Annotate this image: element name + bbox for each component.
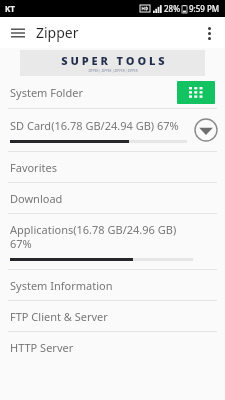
staticText: Download <box>10 191 63 206</box>
button[interactable]: Applications(16.78 GB/24.96 GB) 67% <box>0 214 225 269</box>
staticText: 28% <box>164 3 180 14</box>
staticText: System Information <box>10 278 113 293</box>
button[interactable]: Open navigation menu <box>6 21 30 45</box>
staticText: FTP Client & Server <box>10 309 108 324</box>
button[interactable]: Expand SD Card <box>193 117 219 143</box>
button[interactable]: HTTP Server <box>0 332 225 362</box>
staticText: SD Card(16.78 GB/24.94 GB) 67% <box>10 118 179 133</box>
button[interactable]: System Folder <box>0 77 225 108</box>
button[interactable]: Favorites <box>0 152 225 182</box>
staticText: System Folder <box>10 85 177 100</box>
staticText: Applications(16.78 GB/24.96 GB) 67% <box>10 222 193 251</box>
staticText: 9:59 PM <box>189 3 220 14</box>
button[interactable]: System Information <box>0 270 225 300</box>
button[interactable]: FTP Client & Server <box>0 301 225 331</box>
staticText: Zipper <box>36 23 79 42</box>
staticText: ZIPPER | ZIPPER | ZIPPER | ZIPPER <box>88 69 138 73</box>
button[interactable]: Download <box>0 183 225 213</box>
staticText: HTTP Server <box>10 340 74 355</box>
staticText: KT <box>5 3 15 14</box>
staticText: Favorites <box>10 160 57 175</box>
button[interactable]: More options <box>197 21 221 45</box>
staticText: S U P E R T O O L S <box>61 53 165 68</box>
button[interactable]: S U P E R T O O L S <box>20 50 205 76</box>
button[interactable]: SD Card(16.78 GB/24.94 GB) 67% <box>0 109 225 151</box>
